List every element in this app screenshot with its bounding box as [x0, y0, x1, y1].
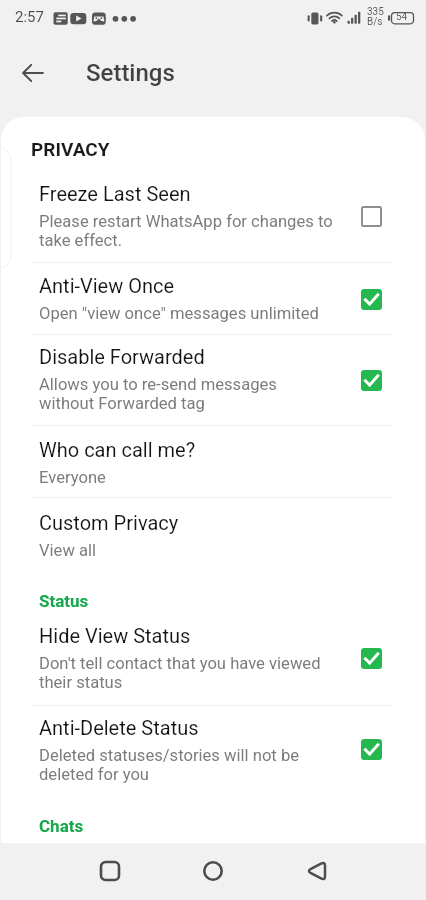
staticText: Disable Forwarded	[39, 345, 205, 368]
button[interactable]: Navigate up	[10, 50, 56, 96]
staticText: Hide View Status	[39, 624, 191, 647]
button[interactable]: Anti-View Once	[1, 263, 425, 335]
staticText: 2:57	[15, 8, 44, 26]
staticText: Status	[39, 591, 89, 611]
staticText: 335	[367, 6, 384, 18]
staticText: Everyone	[39, 468, 106, 487]
button[interactable]: Enabled	[350, 728, 392, 770]
button[interactable]: Enabled	[350, 637, 392, 679]
button[interactable]: Who can call me?	[1, 426, 425, 498]
button[interactable]: Back	[292, 847, 340, 895]
staticText: View all	[39, 541, 97, 560]
staticText: Please restart WhatsApp for changes to t…	[39, 212, 333, 250]
staticText: Anti-Delete Status	[39, 716, 199, 739]
button[interactable]: Hide View Status	[1, 621, 425, 706]
staticText: Don't tell contact that you have viewed …	[39, 654, 333, 692]
staticText: B/s	[367, 16, 383, 28]
button[interactable]: Custom Privacy	[1, 498, 425, 568]
staticText: Custom Privacy	[39, 511, 179, 534]
staticText: Freeze Last Seen	[39, 182, 191, 205]
button[interactable]: Enabled	[350, 278, 392, 320]
staticText: Allows you to re-send messages without F…	[39, 375, 333, 413]
button[interactable]: Anti-Delete Status	[1, 706, 425, 790]
staticText: Settings	[86, 59, 175, 87]
staticText: PRIVACY	[31, 138, 110, 160]
button[interactable]: Enabled	[350, 359, 392, 401]
button[interactable]: Home	[189, 847, 237, 895]
staticText: Open "view once" messages unlimited	[39, 304, 319, 323]
button[interactable]: Freeze Last Seen	[1, 182, 425, 263]
button[interactable]: Recent apps	[86, 847, 134, 895]
staticText: 54	[396, 11, 408, 23]
staticText: Anti-View Once	[39, 274, 175, 297]
button[interactable]: Disabled	[350, 195, 392, 237]
staticText: Deleted statuses/stories will not be del…	[39, 746, 333, 784]
staticText: Who can call me?	[39, 438, 196, 461]
staticText: Chats	[39, 816, 84, 836]
button[interactable]: Disable Forwarded	[1, 335, 425, 426]
